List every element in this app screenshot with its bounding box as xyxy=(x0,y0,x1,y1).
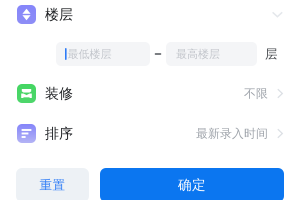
staticText: 最高楼层 xyxy=(176,47,220,61)
staticText: 不限 xyxy=(244,86,268,101)
staticText: 装修 xyxy=(45,85,73,102)
button[interactable]: 装修 xyxy=(0,79,300,108)
staticText: 层 xyxy=(265,46,278,62)
button[interactable]: 确定 xyxy=(100,168,284,200)
staticText: 重置 xyxy=(39,177,65,193)
staticText: 确定 xyxy=(178,176,206,193)
button[interactable]: 楼层 xyxy=(0,0,300,29)
staticText: 最新录入时间 xyxy=(196,126,268,141)
staticText: 排序 xyxy=(45,125,73,142)
button[interactable]: 排序 xyxy=(0,119,300,148)
staticText: 楼层 xyxy=(45,6,73,23)
button[interactable]: 重置 xyxy=(16,168,89,200)
staticText: 最低楼层 xyxy=(68,47,112,61)
